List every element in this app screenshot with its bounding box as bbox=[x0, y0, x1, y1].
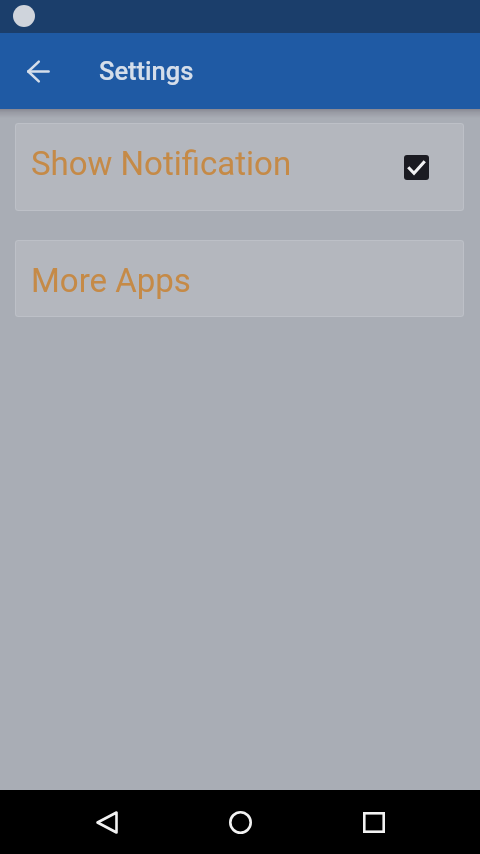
button[interactable]: Home bbox=[174, 790, 307, 854]
button[interactable]: Recents bbox=[307, 790, 440, 854]
button[interactable]: Back bbox=[0, 33, 76, 109]
staticText: Show Notification bbox=[31, 144, 292, 183]
staticText: Settings bbox=[99, 56, 194, 86]
staticText: More Apps bbox=[31, 261, 191, 300]
button[interactable]: Show Notification bbox=[15, 123, 464, 211]
button[interactable]: More Apps bbox=[15, 240, 464, 317]
button[interactable]: Back bbox=[40, 790, 174, 854]
